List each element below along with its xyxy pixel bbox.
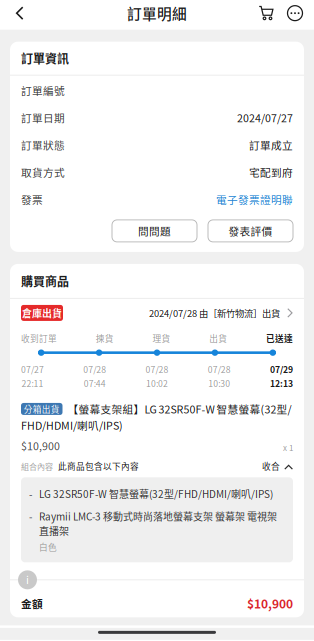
staticText: 07/28: [145, 363, 168, 375]
button[interactable]: 組合內容: [21, 460, 293, 471]
staticText: 22:11: [21, 377, 43, 389]
button[interactable]: 發表評價: [208, 220, 293, 242]
staticText: 訂單狀態: [21, 137, 65, 152]
button[interactable]: Back: [4, 0, 36, 30]
staticText: 發表評價: [228, 223, 272, 239]
button[interactable]: 倉庫出貨: [21, 305, 293, 321]
staticText: 購買商品: [21, 272, 69, 290]
button[interactable]: Information: [18, 570, 37, 589]
staticText: 問問題: [138, 223, 171, 239]
staticText: 07/27: [21, 363, 44, 375]
staticText: 訂單成立: [249, 137, 293, 152]
staticText: 白色: [39, 541, 57, 553]
staticText: $10,900: [247, 595, 293, 612]
staticText: 12:13: [270, 377, 293, 389]
staticText: -: [29, 509, 32, 523]
staticText: 訂單編號: [21, 83, 65, 98]
staticText: 收到訂單: [21, 332, 57, 344]
staticText: 10:02: [146, 377, 168, 389]
staticText: 07/28: [83, 363, 106, 375]
staticText: -: [29, 486, 32, 501]
staticText: 07/29: [270, 363, 293, 375]
staticText: 07:44: [84, 377, 106, 389]
staticText: i: [26, 572, 29, 587]
staticText: 發票: [21, 192, 43, 207]
staticText: 訂單資訊: [21, 49, 69, 67]
staticText: 訂單明細: [127, 2, 187, 24]
staticText: Raymii LMC-3 移動式時尚落地螢幕支架 螢幕架 電視架 直播架: [39, 509, 277, 538]
staticText: 取貨方式: [21, 164, 65, 180]
button[interactable]: 問問題: [112, 220, 197, 242]
staticText: 揀貨: [96, 332, 114, 344]
staticText: 組合內容: [21, 460, 53, 472]
staticText: 此商品包含以下內容: [58, 460, 139, 472]
staticText: 倉庫出貨: [22, 306, 62, 320]
staticText: 理貨: [152, 332, 170, 344]
staticText: 收合: [262, 460, 280, 472]
staticText: 2024/07/27: [237, 110, 293, 125]
staticText: 分箱出貨: [24, 403, 60, 415]
staticText: 10:30: [208, 377, 230, 389]
button[interactable]: Shopping cart: [252, 0, 280, 30]
staticText: $10,900: [21, 438, 60, 453]
staticText: 已送達: [266, 332, 293, 344]
staticText: FHD/HDMI/喇叭/IPS): [21, 417, 123, 433]
staticText: 【螢幕支架組】LG 32SR50F-W 智慧螢幕(32型/: [67, 401, 291, 417]
staticText: 宅配到府: [249, 164, 293, 180]
staticText: 2024/07/28 由［新竹物流］出貨: [149, 306, 280, 320]
staticText: 電子發票證明聯: [216, 192, 293, 207]
staticText: 訂單日期: [21, 110, 65, 125]
staticText: LG 32SR50F-W 智慧螢幕(32型/FHD/HDMI/喇叭/IPS): [39, 486, 273, 501]
staticText: 出貨: [209, 332, 227, 344]
staticText: 金額: [21, 596, 43, 611]
staticText: x 1: [283, 442, 293, 453]
staticText: 07/28: [208, 363, 231, 375]
button[interactable]: More options: [280, 0, 310, 30]
